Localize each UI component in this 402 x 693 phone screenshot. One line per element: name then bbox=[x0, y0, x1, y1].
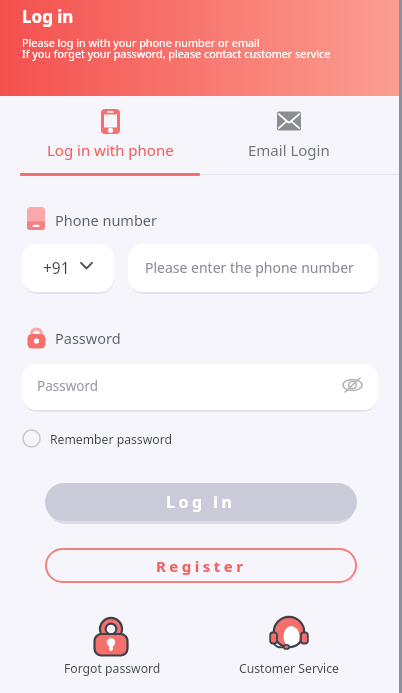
staticText: Log in with phone bbox=[47, 140, 174, 160]
staticText: If you forget your password, please cont… bbox=[22, 46, 331, 61]
button[interactable] bbox=[22, 364, 378, 410]
staticText: Log in bbox=[22, 5, 74, 28]
staticText: Phone number bbox=[55, 210, 157, 230]
staticText: Password bbox=[37, 377, 99, 395]
staticText: Please enter the phone number bbox=[145, 258, 354, 277]
button[interactable] bbox=[22, 244, 114, 292]
staticText: Password bbox=[55, 328, 121, 348]
staticText: Email Login bbox=[248, 140, 330, 160]
button[interactable]: Log in with phone bbox=[0, 139, 220, 161]
staticText: +91 bbox=[43, 257, 70, 278]
button[interactable]: Register bbox=[45, 548, 357, 583]
staticText: Register bbox=[156, 556, 247, 576]
button[interactable] bbox=[238, 610, 342, 680]
button[interactable] bbox=[60, 610, 164, 680]
staticText: Forgot password bbox=[64, 660, 161, 677]
staticText: Remember password bbox=[50, 431, 172, 448]
staticText: Customer Service bbox=[239, 660, 339, 677]
button[interactable]: Log in bbox=[45, 483, 357, 521]
button[interactable]: Remember password bbox=[22, 429, 202, 449]
staticText: Log in bbox=[166, 491, 236, 513]
button[interactable] bbox=[128, 244, 378, 292]
button[interactable]: Email Login bbox=[179, 139, 399, 161]
staticText: Please log in with your phone number or … bbox=[22, 35, 260, 50]
